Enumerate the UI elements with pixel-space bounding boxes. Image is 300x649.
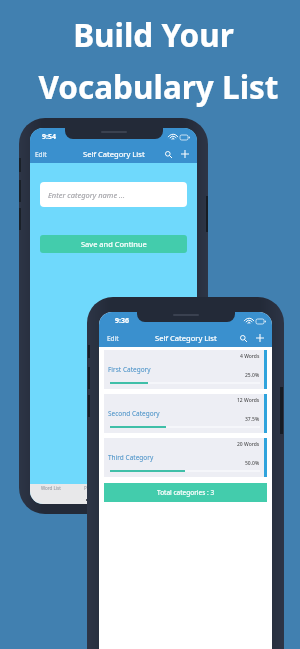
staticText: 50.0% [245, 460, 260, 467]
button[interactable]: Word List [30, 484, 71, 495]
button[interactable]: Practice [71, 484, 113, 495]
button[interactable]: Search [234, 331, 252, 345]
button[interactable]: Search [159, 147, 177, 161]
staticText: Practice [84, 485, 101, 491]
button[interactable]: Save and Continue [40, 235, 187, 253]
staticText: Save and Continue [81, 239, 147, 249]
staticText: 37.5% [245, 416, 260, 423]
staticText: 12 Words [237, 397, 260, 404]
staticText: 9:36 [115, 316, 129, 326]
button[interactable]: 4 Words [104, 350, 267, 389]
staticText: Total categories : 3 [157, 488, 215, 497]
button[interactable]: 12 Words [104, 394, 267, 433]
button[interactable]: Total categories : 3 [104, 483, 267, 502]
staticText: 20 Words [237, 441, 260, 448]
staticText: First Category [108, 365, 151, 374]
staticText: 9:54 [42, 132, 56, 142]
staticText: Vocabulary List [38, 65, 279, 108]
staticText: Third Category [108, 453, 154, 462]
staticText: Self Category List [155, 333, 217, 343]
staticText: Enter category name ... [48, 190, 125, 200]
button[interactable]: 20 Words [104, 438, 267, 477]
staticText: Build Your [73, 13, 234, 56]
staticText: 4 Words [240, 353, 260, 360]
button[interactable]: Enter category name ... [40, 182, 187, 207]
button[interactable]: Settings [155, 484, 197, 495]
button[interactable]: Edit [99, 331, 125, 346]
staticText: Second Category [108, 409, 160, 418]
button[interactable]: Add category [252, 331, 268, 345]
staticText: 25.0% [245, 372, 260, 379]
button[interactable]: Edit [30, 147, 53, 162]
staticText: Self Category List [83, 149, 145, 159]
staticText: Settings [167, 485, 185, 491]
button[interactable]: Add category [177, 147, 193, 161]
staticText: Word List [41, 485, 61, 491]
